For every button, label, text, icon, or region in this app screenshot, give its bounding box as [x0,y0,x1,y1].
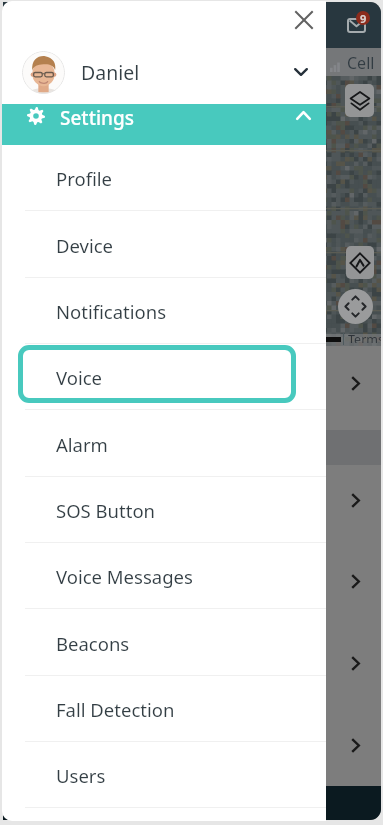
staticText: Terms [348,331,381,343]
button[interactable]: Users [2,742,326,808]
staticText: Voice [56,365,103,390]
button[interactable]: Open [339,367,371,399]
button[interactable]: Notifications [2,278,326,344]
staticText: Voice Messages [56,564,193,589]
button[interactable]: Selected item [3,430,381,465]
button[interactable]: Open [339,647,371,679]
staticText: Device [56,233,114,258]
button[interactable]: Fall Detection [2,676,326,742]
button[interactable]: Beacons [2,610,326,676]
staticText: Notifications [56,299,167,324]
staticText: Cell [347,52,375,74]
button[interactable]: Navigate [346,246,374,279]
staticText: Users [56,763,106,788]
staticText: 9 [360,11,367,25]
button[interactable]: Collapse settings [286,98,320,132]
button[interactable]: Recenter map [338,289,373,324]
button[interactable]: Voice [2,344,326,410]
staticText: Beacons [56,631,130,656]
button[interactable]: Device [2,212,326,278]
staticText: Fall Detection [56,697,175,722]
staticText: Profile [56,166,112,191]
button[interactable]: Close [289,5,319,35]
staticText: SOS Button [56,498,156,523]
button[interactable]: Open [339,729,371,761]
button[interactable]: Map layers [345,84,374,117]
button[interactable]: Alarm [2,411,326,477]
button[interactable]: Voice Messages [2,543,326,609]
button[interactable]: Daniel [2,41,326,103]
button[interactable]: Settings [2,104,326,145]
button[interactable]: SOS Button [2,477,326,543]
staticText: Alarm [56,432,108,457]
button[interactable]: Messages [339,8,373,42]
button[interactable]: Expand profile [284,55,318,89]
staticText: Settings [60,105,134,131]
button[interactable]: Open [339,484,371,516]
button[interactable]: Profile [2,145,326,211]
staticText: Daniel [81,59,140,86]
button[interactable]: Open [339,565,371,597]
